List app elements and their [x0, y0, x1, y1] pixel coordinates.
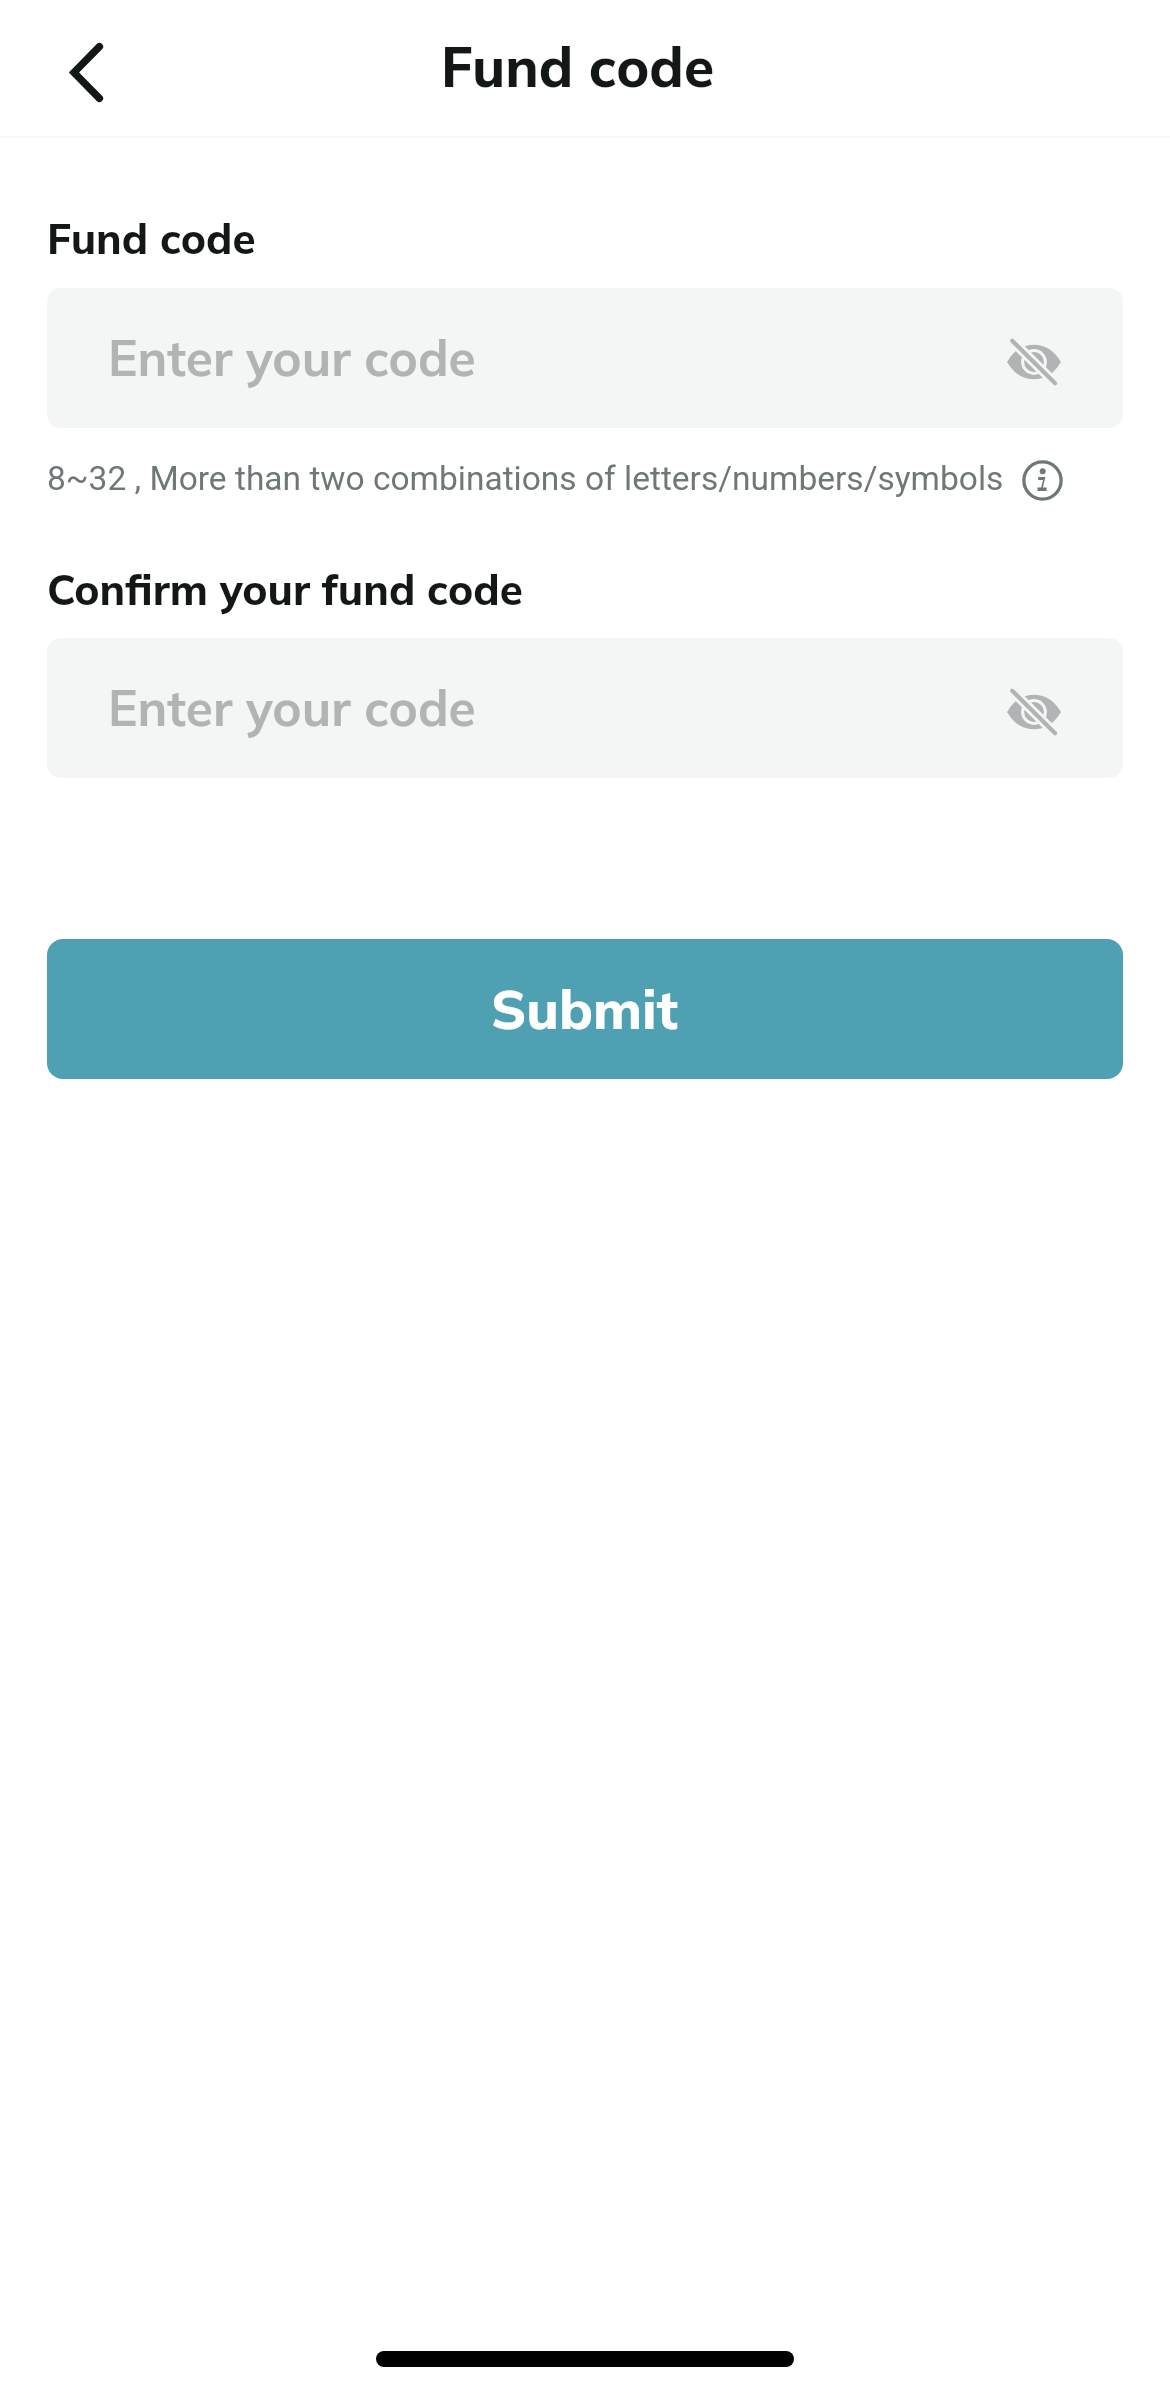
button[interactable]: Show code: [996, 674, 1072, 750]
staticText: 8~32 , More than two combinations of let…: [47, 459, 1004, 498]
staticText: Fund code: [441, 32, 715, 101]
staticText: Enter your code: [108, 326, 476, 388]
button[interactable]: Back: [21, 20, 121, 120]
staticText: Submit: [491, 975, 679, 1043]
staticText: Enter your code: [108, 676, 476, 738]
button[interactable]: Info: [1016, 454, 1068, 506]
button[interactable]: Enter your code: [47, 638, 1123, 778]
button[interactable]: Enter your code: [47, 288, 1123, 428]
button[interactable]: Submit: [47, 939, 1123, 1079]
staticText: Confirm your fund code: [47, 563, 523, 616]
button[interactable]: Show code: [996, 324, 1072, 400]
staticText: Fund code: [47, 212, 256, 265]
